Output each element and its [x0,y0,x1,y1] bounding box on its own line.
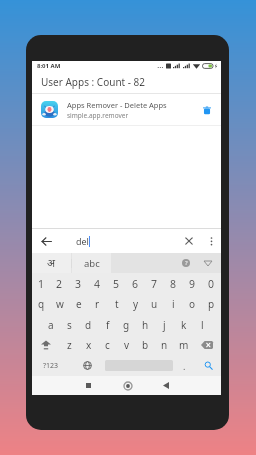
staticText: User Apps : Count - 82 [41,75,146,89]
button[interactable]: m [174,335,193,355]
button[interactable]: p [202,294,221,314]
button[interactable]: Delete [197,100,217,120]
staticText: abc [84,257,100,270]
staticText: 5 [113,277,120,291]
staticText: s [67,318,72,332]
staticText: 0 [208,277,215,291]
staticText: i [172,297,175,311]
staticText: o [189,297,196,311]
staticText: v [124,338,130,352]
staticText: k [181,318,187,332]
button[interactable]: g [117,314,136,335]
button[interactable]: abc [72,253,111,273]
staticText: 4 [94,277,101,291]
staticText: 2 [56,277,63,291]
button[interactable]: Help [179,256,193,270]
button[interactable]: l [193,314,212,335]
button[interactable]: d [79,314,98,335]
staticText: m [179,338,189,352]
staticText: q [38,297,45,311]
button[interactable]: k [174,314,193,335]
staticText: a [48,318,54,332]
staticText: f [106,318,110,332]
staticText: simple.app.remover [67,111,129,120]
button[interactable]: Change language [70,355,105,376]
staticText: y [133,297,139,311]
staticText: 3 [75,277,82,291]
staticText: d [85,318,92,332]
staticText: e [76,297,82,311]
staticText: w [56,297,64,311]
button[interactable]: x [79,335,98,355]
staticText: 8:01 AM [37,62,61,70]
staticText: l [201,318,204,332]
staticText: ?123 [43,361,59,371]
button[interactable]: w [50,294,69,314]
staticText: . [183,360,186,372]
button[interactable]: 4 [88,273,107,294]
staticText: del [76,235,89,247]
button[interactable]: o [183,294,202,314]
staticText: h [142,318,149,332]
staticText: x [86,338,92,352]
button[interactable]: v [117,335,136,355]
button[interactable]: More options [202,229,221,253]
staticText: z [67,338,72,352]
button[interactable]: 8 [164,273,183,294]
staticText: अ [47,256,56,270]
button[interactable]: 6 [126,273,145,294]
button[interactable]: r [88,294,107,314]
button[interactable]: 7 [145,273,164,294]
staticText: Apps Remover - Delete Apps [67,100,167,110]
button[interactable]: 2 [50,273,69,294]
button[interactable]: 0 [202,273,221,294]
button[interactable]: 9 [183,273,202,294]
button[interactable]: Back [156,376,176,395]
staticText: 7 [151,277,158,291]
button[interactable]: अ [32,253,71,273]
button[interactable]: q [32,294,50,314]
button[interactable]: y [126,294,145,314]
staticText: j [163,318,166,332]
staticText: 8 [170,277,177,291]
button[interactable]: c [98,335,117,355]
button[interactable]: a [41,314,60,335]
staticText: ? [185,259,188,267]
button[interactable]: 1 [32,273,50,294]
staticText: u [151,297,158,311]
button[interactable]: s [60,314,79,335]
button[interactable]: Search [196,355,221,376]
button[interactable]: h [136,314,155,335]
button[interactable]: Apps Remover - Delete Apps [32,94,221,125]
button[interactable]: b [136,335,155,355]
button[interactable]: t [107,294,126,314]
button[interactable]: 3 [69,273,88,294]
button[interactable]: ?123 [32,355,70,376]
staticText: 6 [132,277,139,291]
button[interactable]: 5 [107,273,126,294]
button[interactable]: Back [32,229,60,253]
staticText: 9 [189,277,196,291]
button[interactable]: e [69,294,88,314]
button[interactable]: Clear [176,229,202,253]
button[interactable]: Home [118,376,138,395]
staticText: c [105,338,110,352]
button[interactable]: f [98,314,117,335]
staticText: t [115,297,119,311]
button[interactable]: Shift [32,335,60,355]
button[interactable]: i [164,294,183,314]
staticText: 1 [38,277,45,291]
staticText: r [95,297,100,311]
staticText: g [123,318,130,332]
button[interactable]: Recents [78,376,98,395]
button[interactable]: z [60,335,79,355]
button[interactable]: n [155,335,174,355]
button[interactable]: Backspace [193,335,221,355]
button[interactable]: Hide suggestions [201,256,215,270]
button[interactable]: . [173,355,196,376]
staticText: b [142,338,149,352]
staticText: n [161,338,168,352]
button[interactable]: j [155,314,174,335]
button[interactable]: u [145,294,164,314]
